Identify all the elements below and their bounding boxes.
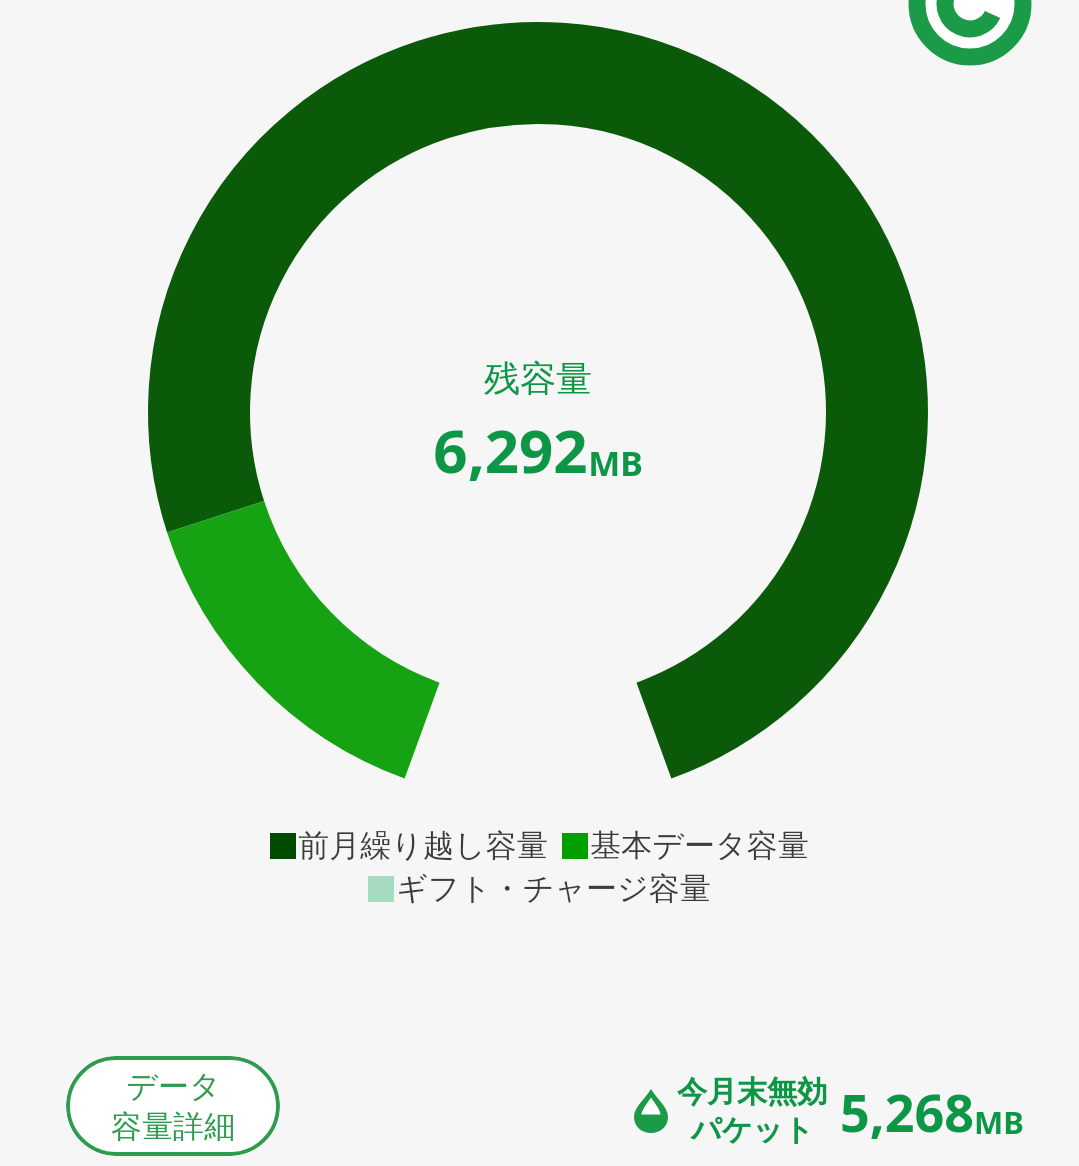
button[interactable]: Refresh [908, 0, 1032, 66]
staticText: データ [126, 1067, 221, 1106]
staticText: 今月末無効 [677, 1073, 827, 1111]
staticText: ギフト・チャージ容量 [396, 869, 711, 908]
staticText: 容量詳細 [111, 1107, 235, 1146]
button[interactable]: ギフト・チャージ容量 [368, 869, 711, 908]
staticText: 5,268 [840, 1076, 974, 1147]
staticText: 残容量 [484, 356, 592, 401]
staticText: 6,292 [433, 409, 588, 491]
button[interactable]: 基本データ容量 [562, 826, 809, 865]
button[interactable]: 今月末無効 [634, 1073, 1024, 1149]
button[interactable]: 前月繰り越し容量 [270, 826, 548, 865]
button[interactable]: データ [66, 1056, 280, 1156]
staticText: 基本データ容量 [590, 826, 809, 865]
staticText: 前月繰り越し容量 [298, 826, 548, 865]
staticText: MB [974, 1101, 1024, 1143]
staticText: MB [588, 440, 643, 486]
staticText: パケット [691, 1111, 814, 1149]
